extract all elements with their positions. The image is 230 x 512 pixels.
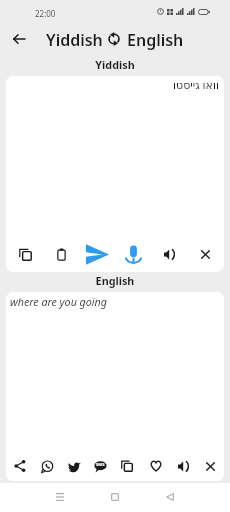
staticText: 22:00: [35, 8, 56, 19]
button[interactable]: Clear text: [193, 242, 217, 266]
button[interactable]: Recent apps: [46, 483, 74, 511]
button[interactable]: Yiddish: [46, 29, 103, 51]
button[interactable]: Copy: [115, 454, 139, 478]
button[interactable]: Home: [101, 483, 129, 511]
button[interactable]: Favorite: [144, 454, 168, 478]
staticText: where are you going: [10, 295, 107, 310]
button[interactable]: Translate: [85, 242, 109, 266]
staticText: וואו גייסטו: [173, 77, 219, 92]
button[interactable]: Back: [156, 483, 184, 511]
button[interactable]: Speak input: [121, 242, 145, 266]
button[interactable]: Navigate back: [6, 26, 31, 51]
button[interactable]: Share: [8, 454, 32, 478]
staticText: SMS: [96, 462, 105, 468]
button[interactable]: Send SMS: [88, 454, 112, 478]
button[interactable]: Swap languages: [104, 29, 124, 49]
button[interactable]: Paste: [49, 242, 73, 266]
button[interactable]: Listen: [171, 454, 195, 478]
button[interactable]: Share on WhatsApp: [35, 454, 59, 478]
staticText: Yiddish: [0, 57, 230, 72]
button[interactable]: English: [127, 29, 184, 51]
button[interactable]: Share on Twitter: [62, 454, 86, 478]
staticText: English: [0, 273, 230, 288]
button[interactable]: Copy: [13, 242, 37, 266]
button[interactable]: Listen: [157, 242, 181, 266]
button[interactable]: Close: [198, 454, 222, 478]
